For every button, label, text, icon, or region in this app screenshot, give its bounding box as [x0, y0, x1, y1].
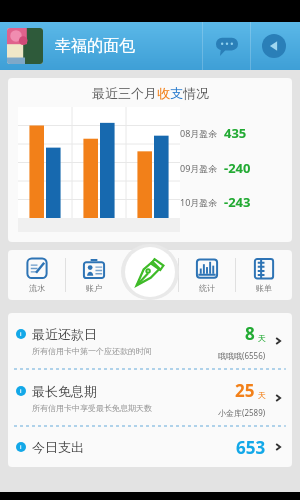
staticText: 账单 — [256, 283, 272, 293]
button[interactable]: Back — [251, 22, 297, 70]
staticText: 653 — [236, 436, 266, 459]
button[interactable]: 统计 — [179, 250, 235, 300]
staticText: 统计 — [199, 283, 215, 293]
staticText: 8 — [245, 322, 255, 345]
staticText: 最近还款日 — [32, 326, 97, 342]
button[interactable]: 账单 — [236, 250, 292, 300]
staticText: 08月盈余 — [180, 127, 218, 139]
staticText: 天 — [258, 390, 266, 400]
staticText: 天 — [258, 333, 266, 343]
staticText: 所有信用卡中第一个应还款的时间 — [32, 346, 152, 356]
staticText: 最近三个月收支情况 — [92, 85, 209, 101]
staticText: i — [20, 387, 22, 395]
button[interactable]: Profile photo — [7, 28, 43, 64]
button[interactable]: 账户 — [66, 250, 122, 300]
button[interactable]: Add record — [125, 247, 175, 297]
staticText: 10月盈余 — [180, 196, 218, 208]
staticText: -240 — [224, 159, 251, 177]
staticText: 幸福的面包 — [55, 36, 135, 56]
staticText: 小金库(2589) — [218, 407, 266, 418]
button[interactable]: Messages — [203, 22, 250, 70]
button[interactable]: i — [8, 370, 292, 426]
staticText: 最长免息期 — [32, 383, 97, 399]
staticText: -243 — [224, 193, 251, 211]
staticText: 今日支出 — [32, 439, 84, 455]
staticText: 25 — [235, 379, 255, 402]
staticText: 账户 — [86, 283, 102, 293]
staticText: 所有信用卡中享受最长免息期天数 — [32, 403, 152, 413]
staticText: 09月盈余 — [180, 162, 218, 174]
staticText: i — [20, 443, 22, 451]
button[interactable]: i — [8, 427, 292, 467]
button[interactable]: 流水 — [8, 250, 65, 300]
staticText: i — [20, 330, 22, 338]
staticText: 流水 — [29, 283, 45, 293]
button[interactable]: i — [8, 313, 292, 369]
staticText: 哦哦哦(6556) — [218, 350, 266, 361]
staticText: 435 — [224, 124, 247, 142]
